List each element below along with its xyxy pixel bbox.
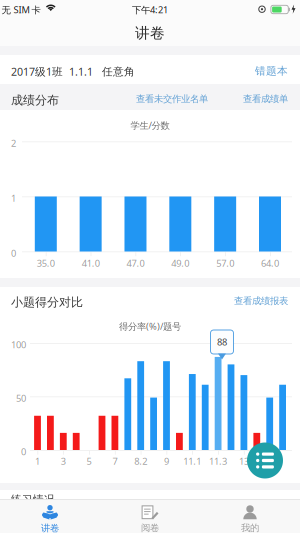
- staticText: 8.2: [134, 455, 147, 467]
- staticText: 64.0: [261, 257, 279, 269]
- staticText: 5: [87, 455, 92, 467]
- staticText: 57.0: [216, 257, 234, 269]
- button[interactable]: 错题本: [246, 57, 297, 85]
- button[interactable]: 题目列表: [247, 442, 283, 478]
- staticText: 49.0: [171, 257, 189, 269]
- staticText: 1: [11, 192, 16, 204]
- staticText: 0: [11, 247, 16, 259]
- button[interactable]: 查看未交作业名单: [129, 86, 215, 112]
- button[interactable]: 查看成绩报表: [227, 288, 295, 314]
- staticText: 查看成绩报表: [234, 295, 288, 307]
- button[interactable]: 我的: [200, 503, 300, 533]
- staticText: 2017级1班: [11, 64, 63, 79]
- staticText: 查看成绩单: [243, 93, 288, 105]
- staticText: 练习情况: [11, 493, 55, 506]
- staticText: 2: [11, 137, 16, 149]
- staticText: 下午4:21: [132, 3, 168, 16]
- staticText: 100: [11, 338, 26, 351]
- staticText: 讲卷: [135, 24, 165, 42]
- staticText: 41.0: [82, 257, 100, 269]
- staticText: 阅卷: [141, 522, 159, 533]
- button[interactable]: 讲卷: [0, 503, 100, 533]
- staticText: 50: [16, 392, 26, 404]
- staticText: 错题本: [255, 64, 288, 78]
- button[interactable]: 查看成绩单: [236, 86, 295, 112]
- staticText: 47.0: [126, 257, 144, 269]
- staticText: 小题得分对比: [11, 295, 83, 309]
- staticText: 成绩分布: [11, 93, 59, 107]
- staticText: 88: [217, 336, 227, 348]
- staticText: 9: [164, 455, 169, 467]
- staticText: 11.1: [183, 455, 201, 467]
- staticText: 11.3: [209, 455, 227, 467]
- staticText: 35.0: [37, 257, 55, 269]
- staticText: 我的: [241, 522, 259, 533]
- staticText: 0: [21, 445, 26, 458]
- staticText: 讲卷: [41, 522, 59, 533]
- staticText: 任意角: [102, 65, 135, 78]
- button[interactable]: 阅卷: [100, 503, 200, 533]
- staticText: 查看未交作业名单: [136, 93, 208, 105]
- staticText: 1.1.1: [69, 64, 93, 79]
- staticText: 学生/分数: [130, 119, 169, 131]
- staticText: 13: [239, 455, 249, 467]
- staticText: 1: [35, 455, 40, 467]
- staticText: 7: [112, 455, 117, 467]
- staticText: 无 SIM 卡: [1, 3, 40, 16]
- staticText: 3: [61, 455, 66, 467]
- staticText: 得分率(%)/题号: [119, 320, 181, 332]
